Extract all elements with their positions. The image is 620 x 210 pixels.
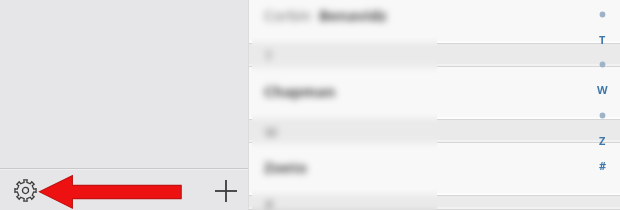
button[interactable]: T: [249, 43, 620, 67]
staticText: W: [265, 123, 278, 141]
button[interactable]: Chapman: [252, 67, 437, 119]
button[interactable]: Zoeto: [252, 143, 437, 195]
staticText: Corbin: [264, 5, 319, 25]
button[interactable]: Add contact: [205, 170, 247, 210]
button[interactable]: #: [252, 195, 437, 210]
staticText: #: [265, 195, 274, 210]
staticText: Zoeto: [264, 157, 307, 177]
staticText: #: [599, 158, 607, 173]
staticText: Benavidz: [319, 5, 387, 25]
staticText: Corbin: [264, 5, 319, 25]
button[interactable]: W: [252, 119, 437, 143]
staticText: Chapman: [264, 81, 336, 101]
staticText: T: [599, 32, 606, 47]
staticText: W: [597, 82, 608, 97]
button[interactable]: T: [594, 31, 611, 48]
button[interactable]: Zoeto: [249, 143, 620, 195]
button[interactable]: Chapman: [249, 67, 620, 119]
staticText: Zoeto: [264, 157, 307, 177]
button[interactable]: Corbin: [249, 0, 620, 43]
staticText: #: [265, 195, 274, 210]
button[interactable]: W: [594, 81, 611, 98]
button[interactable]: Corbin: [252, 0, 437, 43]
button[interactable]: Z: [594, 132, 611, 149]
staticText: W: [265, 123, 278, 141]
staticText: T: [265, 47, 273, 65]
button[interactable]: Jump: [595, 57, 610, 72]
staticText: T: [265, 47, 273, 65]
staticText: Benavidz: [319, 5, 387, 25]
button[interactable]: Jump: [595, 7, 610, 22]
staticText: Chapman: [264, 81, 336, 101]
button[interactable]: Jump: [595, 108, 610, 123]
button[interactable]: Settings: [4, 169, 46, 210]
button[interactable]: #: [249, 195, 620, 210]
button[interactable]: W: [249, 119, 620, 143]
staticText: Z: [599, 133, 606, 148]
button[interactable]: #: [594, 157, 611, 174]
